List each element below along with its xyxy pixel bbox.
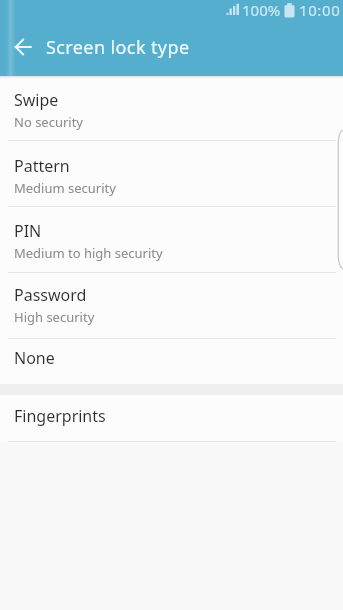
staticText: 100% [242,0,281,20]
staticText: Password [14,284,87,306]
button[interactable]: Swipe [0,79,343,140]
button[interactable]: PIN [0,207,343,272]
staticText: Fingerprints [14,405,106,427]
staticText: PIN [14,220,42,242]
staticText: 10:00 [299,0,341,20]
staticText: Medium to high security [14,244,163,262]
staticText: Screen lock type [46,35,190,60]
button[interactable]: None [0,339,343,384]
button[interactable]: Fingerprints [0,395,343,441]
staticText: Pattern [14,155,70,177]
staticText: No security [14,113,84,131]
staticText: None [14,347,55,369]
staticText: High security [14,308,95,326]
button[interactable]: Password [0,273,343,338]
button[interactable]: Pattern [0,141,343,206]
staticText: Medium security [14,179,116,197]
button[interactable] [0,24,46,70]
staticText: Swipe [14,89,59,111]
